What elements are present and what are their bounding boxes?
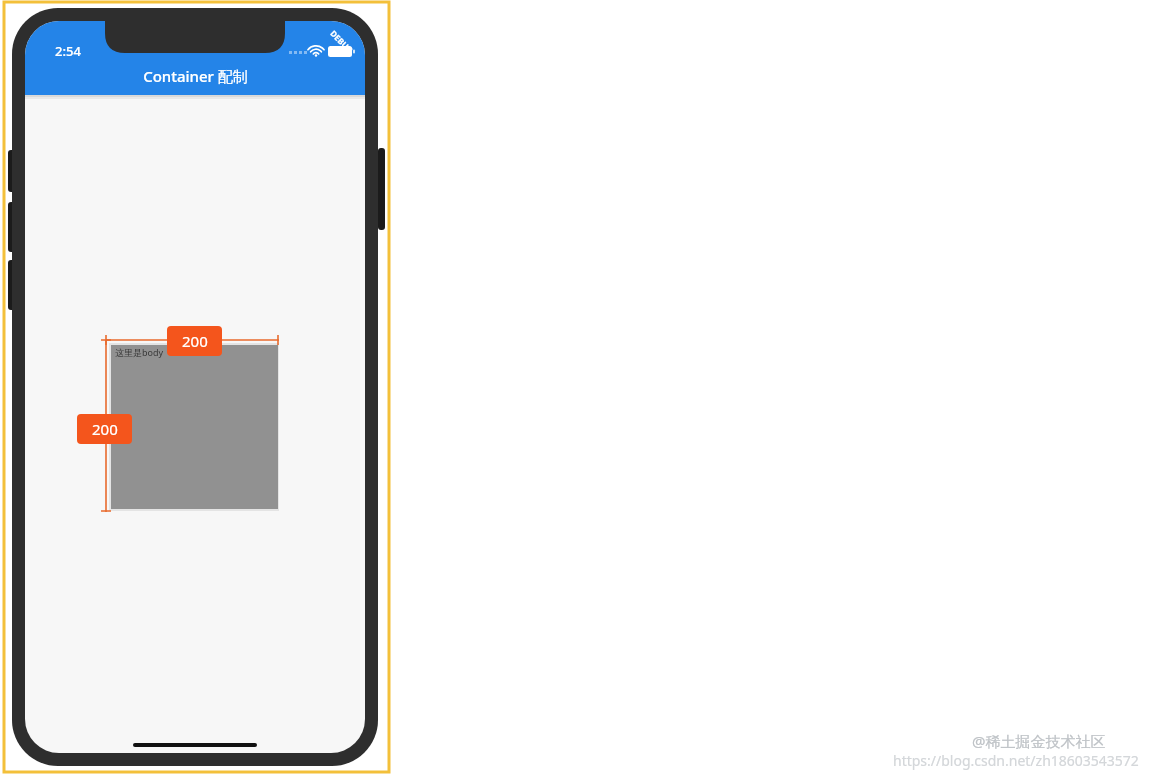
staticText: @稀土掘金技术社区 [972,731,1106,751]
staticText: https://blog.csdn.net/zh18603543572 [893,751,1139,770]
button[interactable]: Home indicator [133,743,257,747]
staticText: 2:54 [55,42,81,60]
button[interactable]: 200 [167,326,222,356]
staticText: 200 [182,331,208,351]
staticText: 200 [92,419,118,439]
staticText: Container 配制 [143,66,248,86]
staticText: 这里是body [115,346,164,358]
button[interactable]: 200 [77,414,132,444]
staticText: DEBUG [328,28,356,55]
